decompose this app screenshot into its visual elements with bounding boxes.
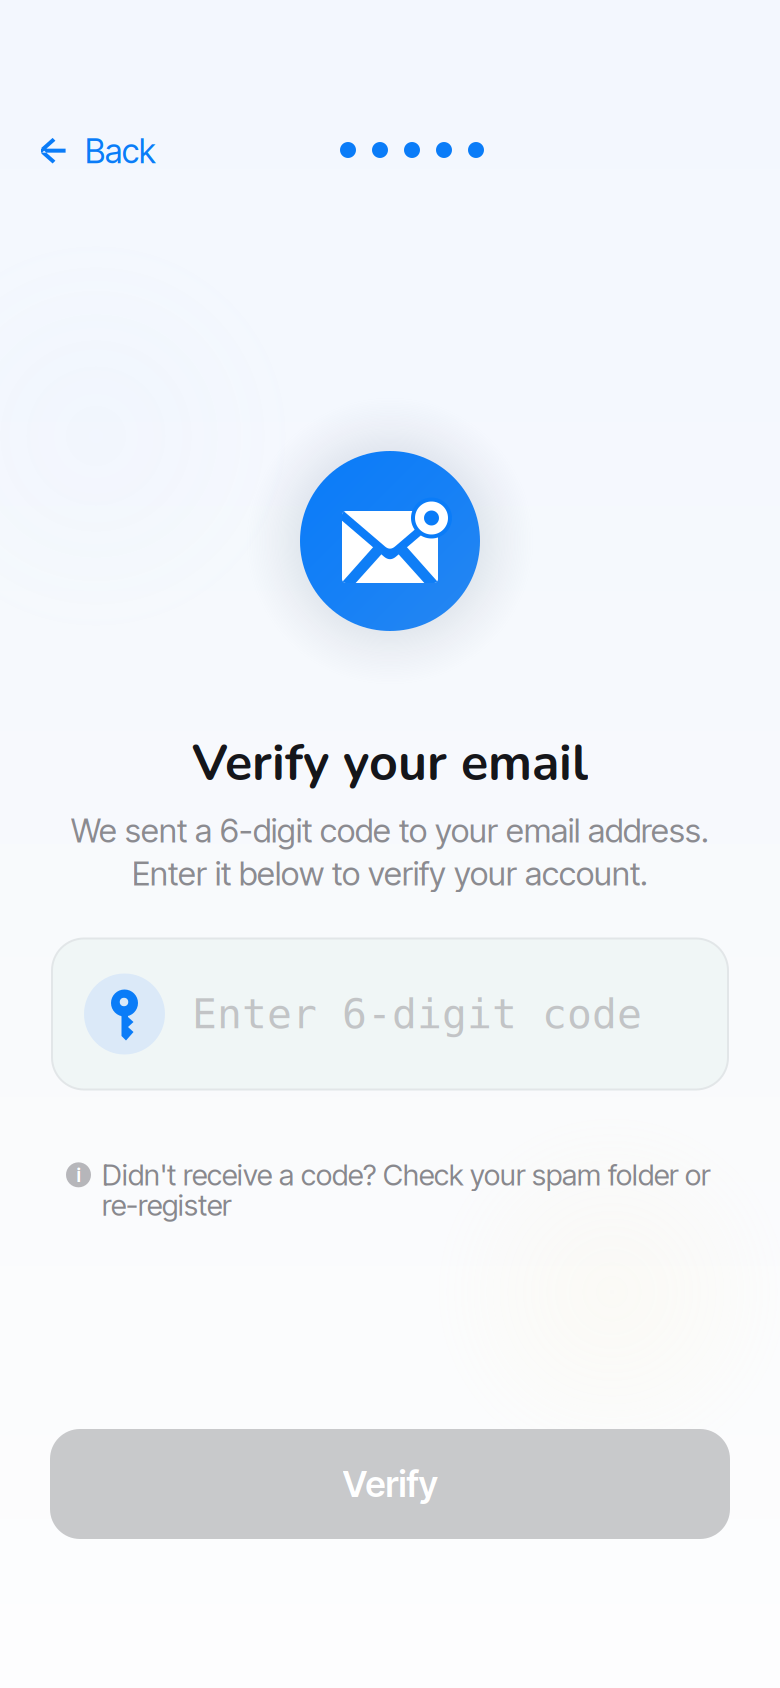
staticText: i <box>76 1163 80 1187</box>
button[interactable]: Enter 6-digit code <box>52 938 728 1089</box>
button[interactable]: Verify <box>50 1429 730 1539</box>
button[interactable]: i <box>66 1157 738 1223</box>
staticText: Enter it below to verify your account. <box>132 853 648 893</box>
staticText: Verify your email <box>192 729 588 797</box>
staticText: Back <box>85 131 156 171</box>
staticText: Verify <box>342 1462 437 1506</box>
staticText: Enter 6-digit code <box>192 990 642 1038</box>
staticText: Didn't receive a code? Check your spam f… <box>102 1157 710 1223</box>
button[interactable]: Back <box>32 119 164 183</box>
staticText: We sent a 6-digit code to your email add… <box>71 811 709 850</box>
